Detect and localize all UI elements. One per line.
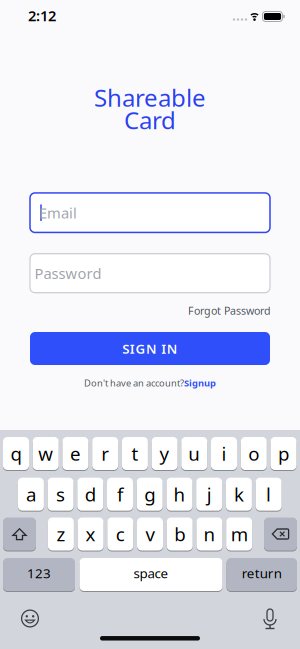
button[interactable]: a xyxy=(18,477,44,511)
button[interactable]: c xyxy=(107,517,133,551)
staticText: l xyxy=(266,482,271,507)
staticText: i xyxy=(221,441,226,466)
staticText: k xyxy=(234,482,244,507)
button[interactable]: m xyxy=(226,517,252,551)
staticText: h xyxy=(173,482,185,507)
staticText: Shareable xyxy=(94,82,206,113)
button[interactable] xyxy=(3,517,36,551)
staticText: c xyxy=(116,522,125,546)
button[interactable]: return xyxy=(226,557,297,591)
staticText: 123 xyxy=(27,564,51,582)
button[interactable]: o xyxy=(241,436,267,470)
button[interactable]: l xyxy=(256,477,282,511)
staticText: n xyxy=(203,522,215,546)
staticText: Card xyxy=(124,104,176,136)
staticText: Don't have an account? xyxy=(84,377,184,389)
button[interactable] xyxy=(260,607,280,629)
button[interactable]: e xyxy=(62,436,88,470)
staticText: b xyxy=(174,522,185,546)
staticText: j xyxy=(207,482,212,507)
button[interactable]: d xyxy=(77,477,103,511)
staticText: Forgot Password xyxy=(188,303,271,318)
button[interactable]: z xyxy=(48,517,74,551)
button[interactable] xyxy=(264,517,297,551)
button[interactable]: Email xyxy=(30,193,270,232)
staticText: space xyxy=(133,564,168,582)
staticText: y xyxy=(160,441,170,466)
button[interactable]: Forgot Password xyxy=(188,303,271,318)
button[interactable]: Password xyxy=(30,254,270,293)
staticText: x xyxy=(86,522,96,546)
button[interactable]: p xyxy=(270,436,296,470)
button[interactable]: n xyxy=(196,517,222,551)
staticText: w xyxy=(38,441,53,466)
button[interactable]: SIGN IN xyxy=(30,332,270,365)
staticText: Password xyxy=(34,263,101,283)
staticText: SIGN IN xyxy=(122,340,178,357)
button[interactable]: h xyxy=(166,477,192,511)
staticText: e xyxy=(70,441,81,466)
button[interactable]: y xyxy=(152,436,178,470)
staticText: return xyxy=(242,564,282,582)
button[interactable]: k xyxy=(226,477,252,511)
staticText: r xyxy=(101,441,109,466)
staticText: u xyxy=(188,441,200,466)
button[interactable]: s xyxy=(48,477,74,511)
button[interactable]: 123 xyxy=(3,557,75,591)
staticText: Email xyxy=(39,203,77,222)
button[interactable]: g xyxy=(137,477,163,511)
button[interactable]: r xyxy=(92,436,118,470)
button[interactable]: t xyxy=(122,436,148,470)
staticText: o xyxy=(248,441,259,466)
staticText: z xyxy=(56,522,65,546)
button[interactable]: w xyxy=(33,436,59,470)
button[interactable]: x xyxy=(78,517,104,551)
button[interactable]: Don't have an account? xyxy=(84,377,216,389)
staticText: t xyxy=(131,441,138,466)
button[interactable]: b xyxy=(167,517,193,551)
button[interactable]: j xyxy=(196,477,222,511)
button[interactable]: u xyxy=(181,436,207,470)
staticText: g xyxy=(144,482,155,507)
staticText: v xyxy=(145,522,154,546)
button[interactable]: i xyxy=(211,436,237,470)
button[interactable]: v xyxy=(137,517,163,551)
staticText: 2:12 xyxy=(28,6,56,25)
staticText: d xyxy=(85,482,96,507)
staticText: s xyxy=(56,482,65,507)
staticText: f xyxy=(117,482,123,507)
button[interactable] xyxy=(20,608,40,628)
staticText: q xyxy=(10,441,21,466)
button[interactable]: q xyxy=(3,436,29,470)
staticText: a xyxy=(26,482,36,507)
staticText: m xyxy=(231,522,248,546)
staticText: p xyxy=(278,441,289,466)
staticText: Signup xyxy=(184,377,216,389)
button[interactable]: f xyxy=(107,477,133,511)
button[interactable]: space xyxy=(79,557,222,591)
